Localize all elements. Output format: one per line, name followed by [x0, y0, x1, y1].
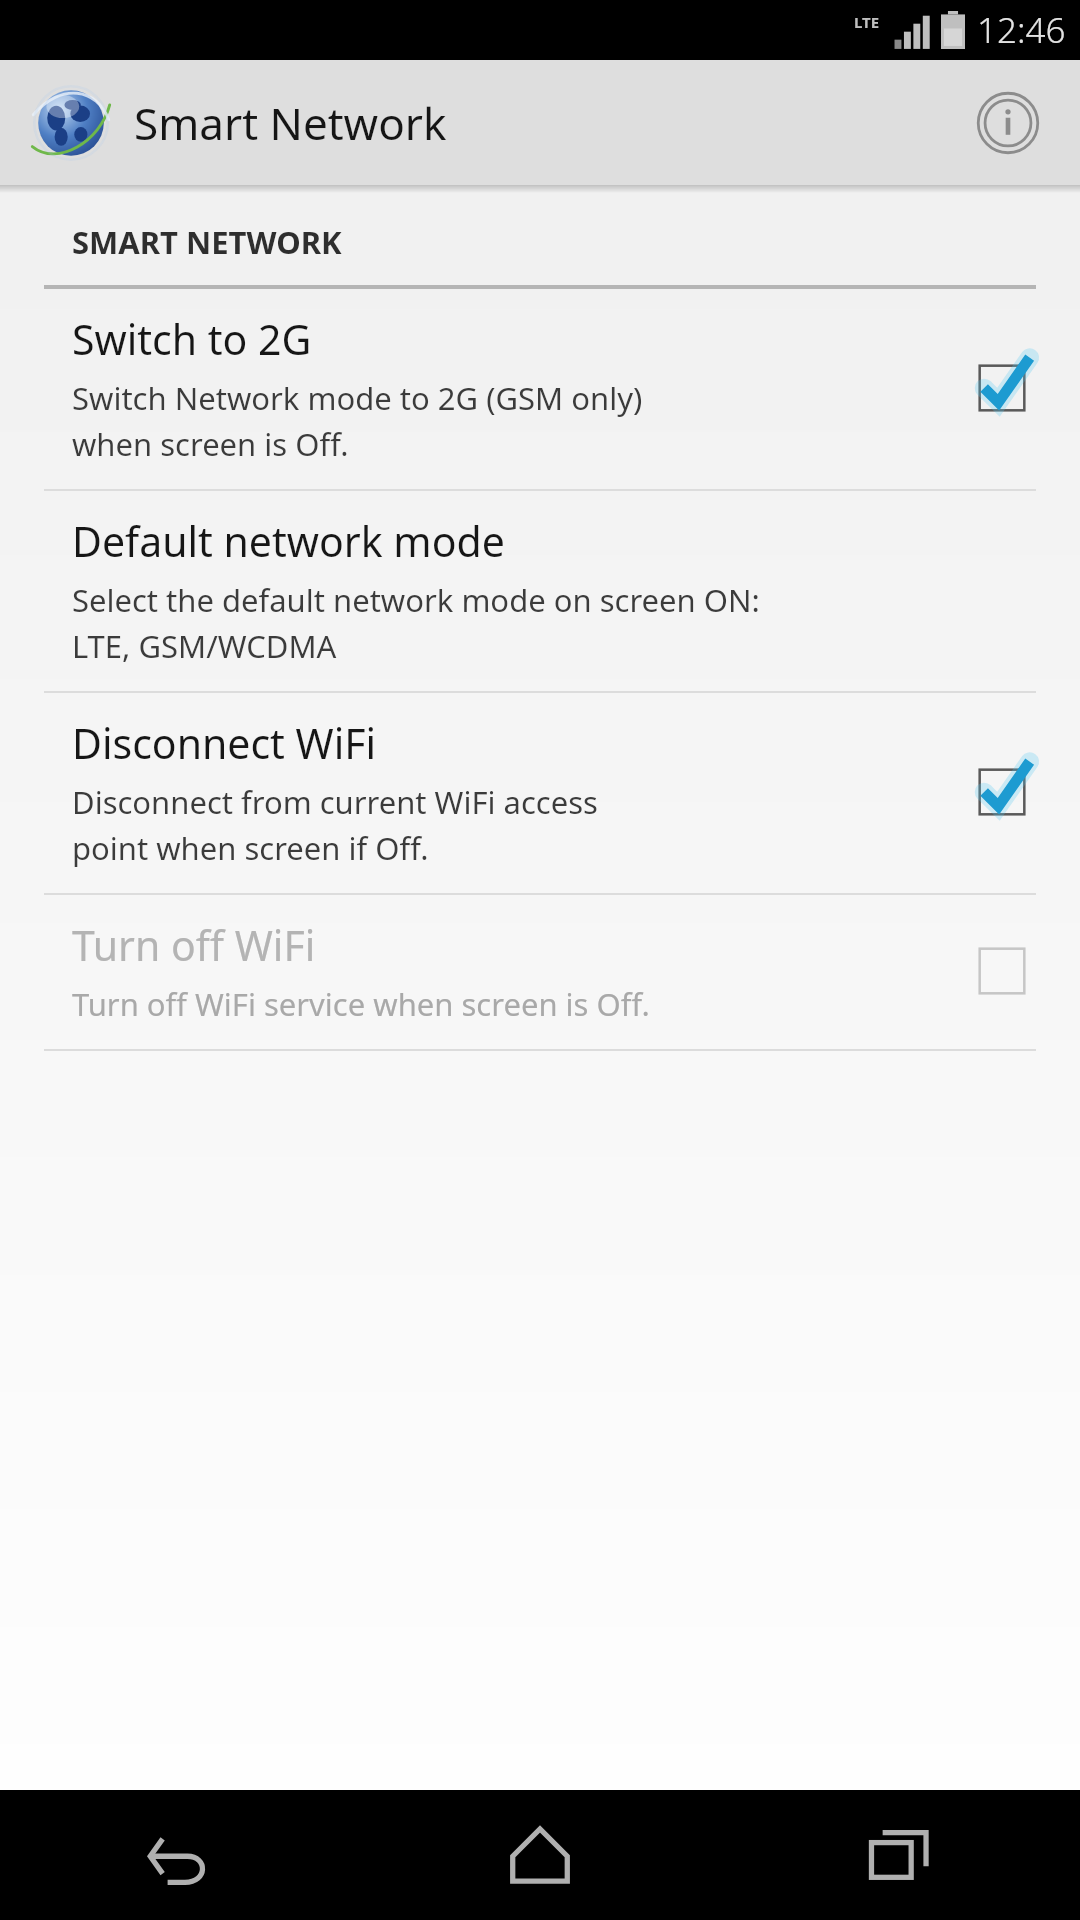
button[interactable]: Default network mode: [0, 491, 1080, 691]
staticText: Switch Network mode to 2G (GSM only): [72, 377, 643, 419]
staticText: when screen is Off.: [72, 423, 349, 465]
staticText: Switch to 2G: [72, 311, 312, 367]
staticText: LTE, GSM/WCDMA: [72, 625, 337, 667]
button[interactable]: Disconnect WiFi: [0, 693, 1080, 893]
staticText: LTE: [854, 12, 880, 32]
staticText: point when screen if Off.: [72, 827, 429, 869]
button[interactable]: Home: [360, 1790, 720, 1920]
staticText: Disconnect from current WiFi access: [72, 781, 598, 823]
staticText: Select the default network mode on scree…: [72, 579, 760, 621]
staticText: Default network mode: [72, 513, 505, 569]
button[interactable]: Switch to 2G: [0, 289, 1080, 489]
button[interactable]: Turn off WiFi: [0, 895, 1080, 1049]
staticText: SMART NETWORK: [72, 221, 342, 263]
button[interactable]: Disconnect WiFi: [954, 744, 1050, 840]
staticText: Turn off WiFi: [72, 917, 316, 973]
button[interactable]: About: [960, 75, 1056, 171]
staticText: Disconnect WiFi: [72, 715, 377, 771]
button[interactable]: Back: [0, 1790, 360, 1920]
staticText: Smart Network: [134, 93, 447, 153]
button[interactable]: Recent apps: [720, 1790, 1080, 1920]
staticText: 12:46: [977, 6, 1066, 54]
staticText: Turn off WiFi service when screen is Off…: [72, 983, 650, 1025]
button[interactable]: Turn off WiFi: [954, 923, 1050, 1019]
button[interactable]: Switch to 2G: [954, 340, 1050, 436]
